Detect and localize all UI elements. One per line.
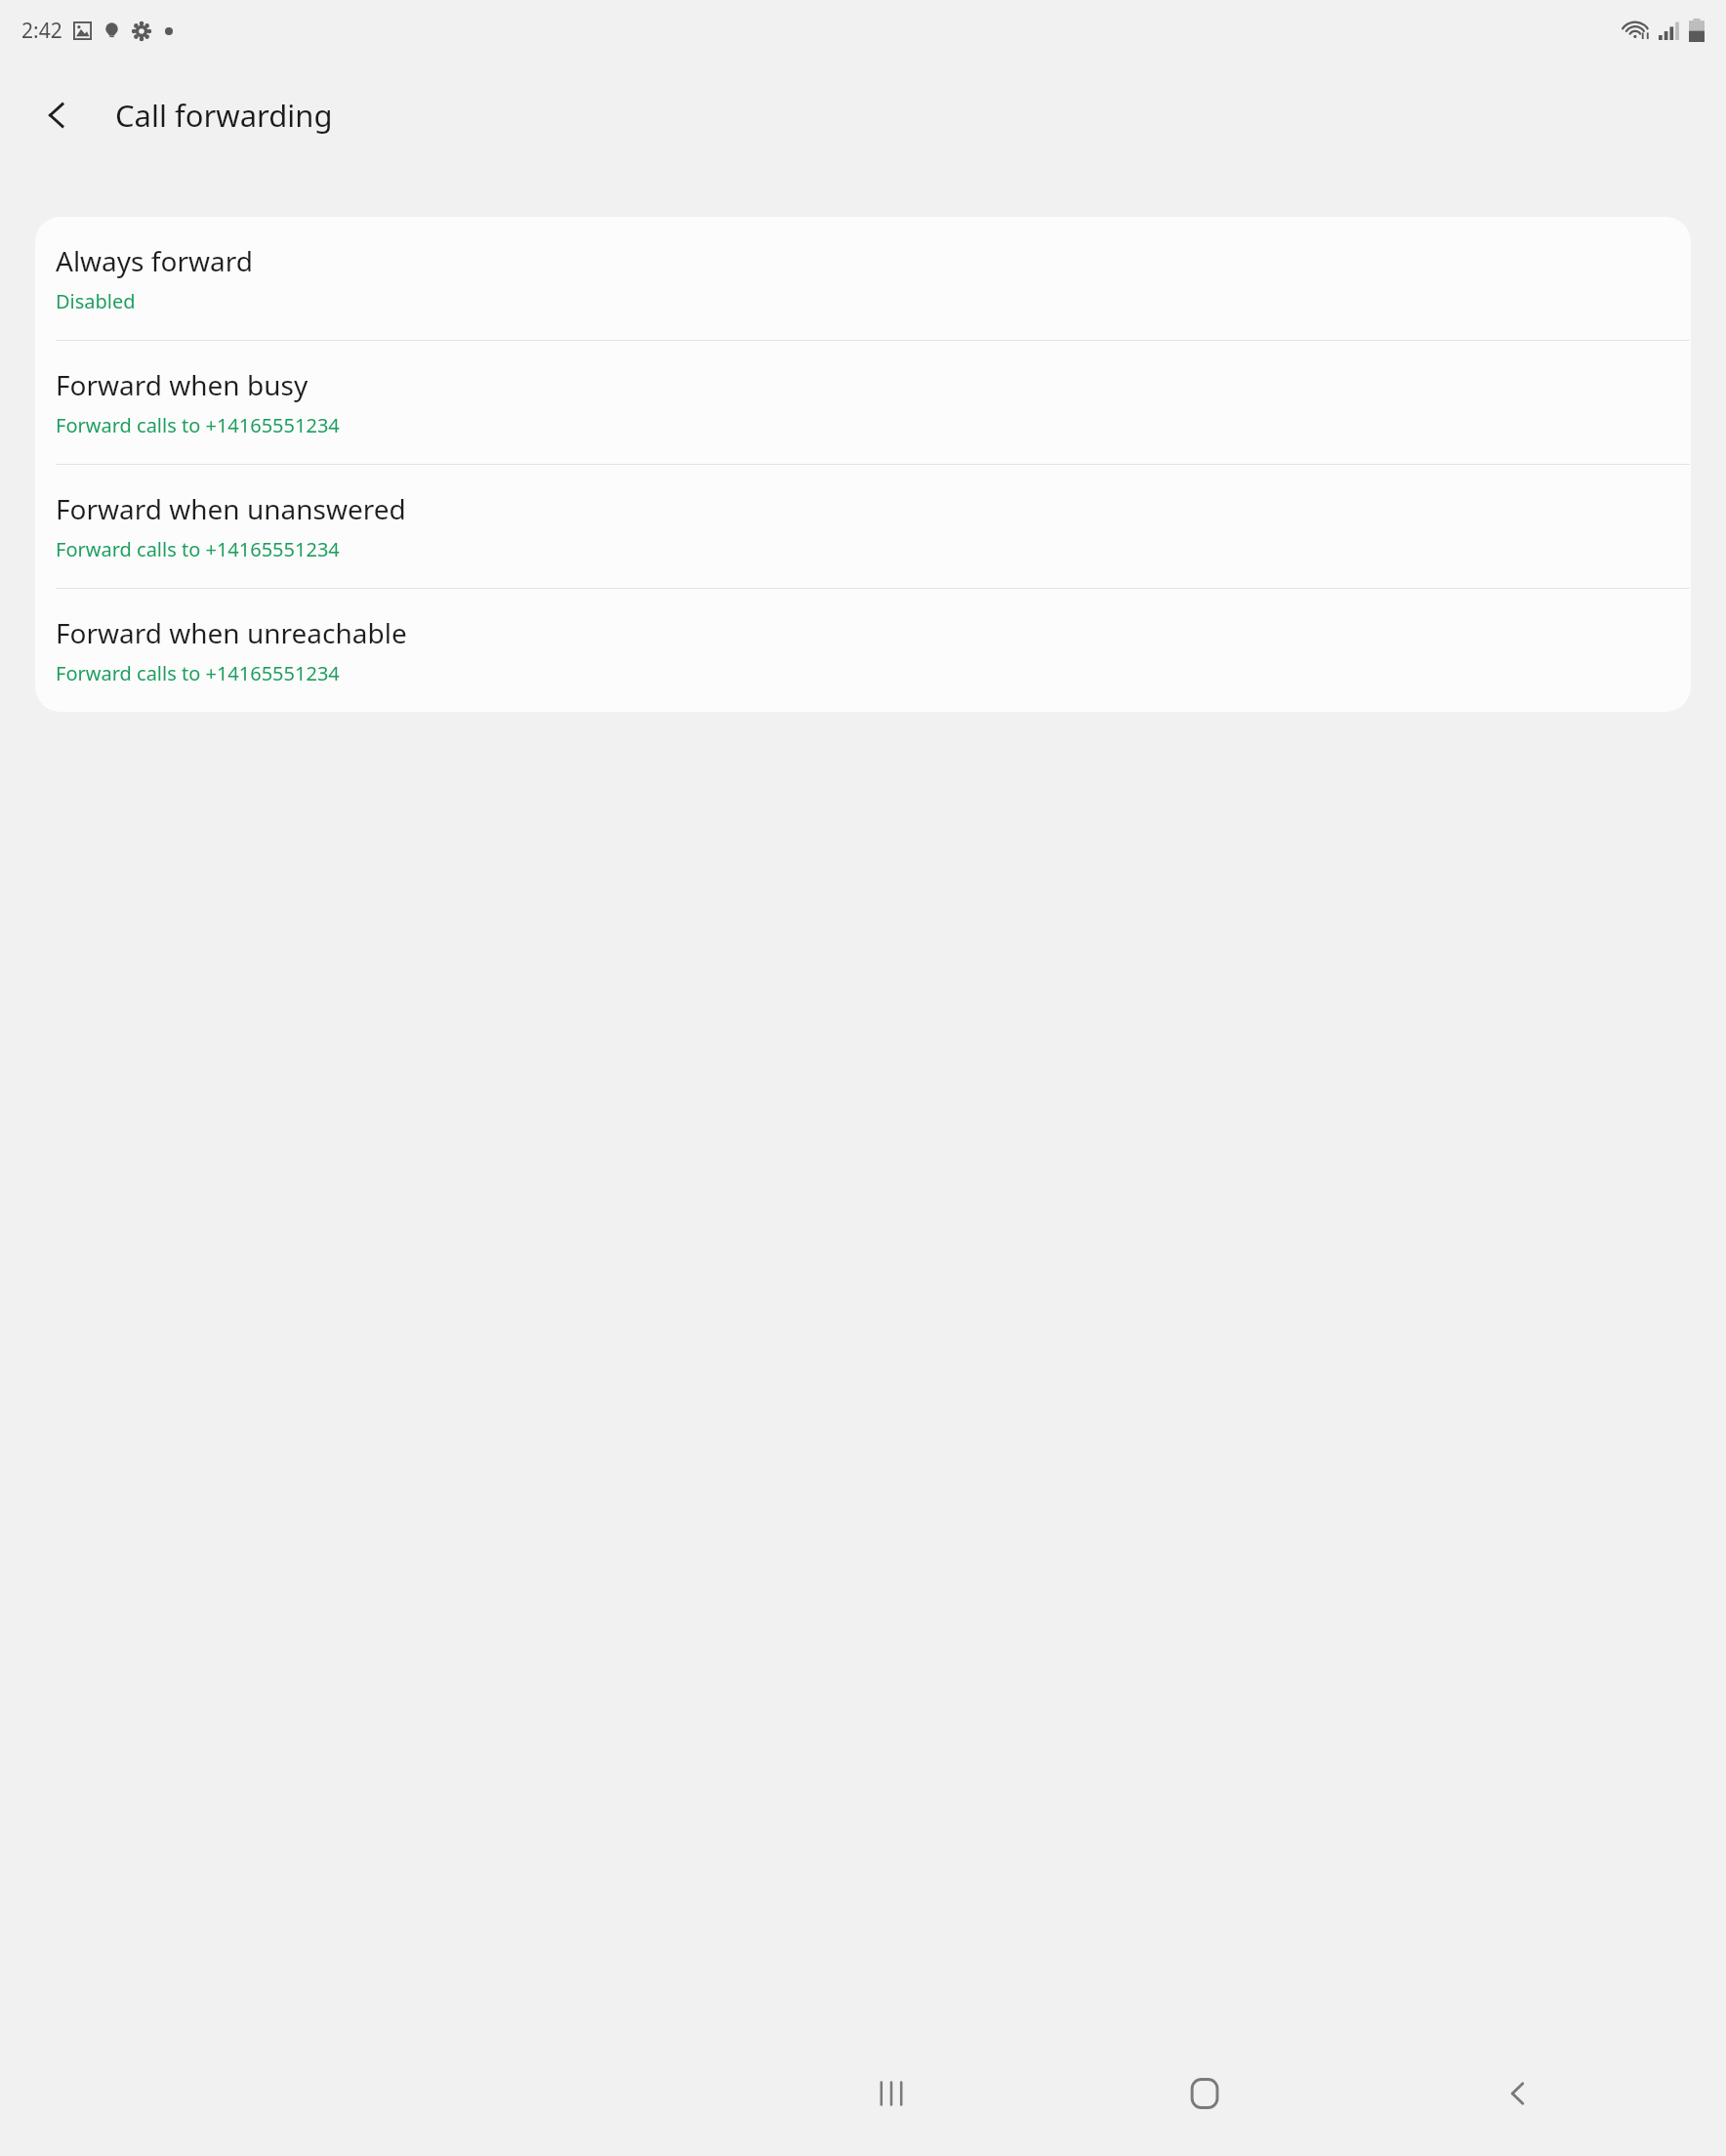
staticText: Forward when unreachable — [56, 614, 407, 651]
button[interactable]: Back — [29, 88, 84, 143]
staticText: Forward calls to +14165551234 — [56, 536, 340, 562]
button[interactable]: Always forward — [35, 217, 1691, 340]
staticText: Forward when unanswered — [56, 490, 406, 527]
staticText: 2:42 — [21, 17, 62, 45]
button[interactable]: Home — [1158, 2047, 1252, 2140]
button[interactable]: Forward when unanswered — [35, 465, 1691, 588]
button[interactable]: Forward when busy — [35, 341, 1691, 464]
staticText: Disabled — [56, 288, 136, 314]
staticText: Always forward — [56, 242, 253, 279]
button[interactable]: Forward when unreachable — [35, 589, 1691, 712]
staticText: Forward calls to +14165551234 — [56, 412, 340, 438]
staticText: Call forwarding — [115, 95, 333, 136]
button[interactable]: Recent apps — [844, 2047, 938, 2140]
staticText: Forward when busy — [56, 366, 308, 403]
button[interactable]: Back — [1471, 2047, 1565, 2140]
staticText: Forward calls to +14165551234 — [56, 660, 340, 686]
